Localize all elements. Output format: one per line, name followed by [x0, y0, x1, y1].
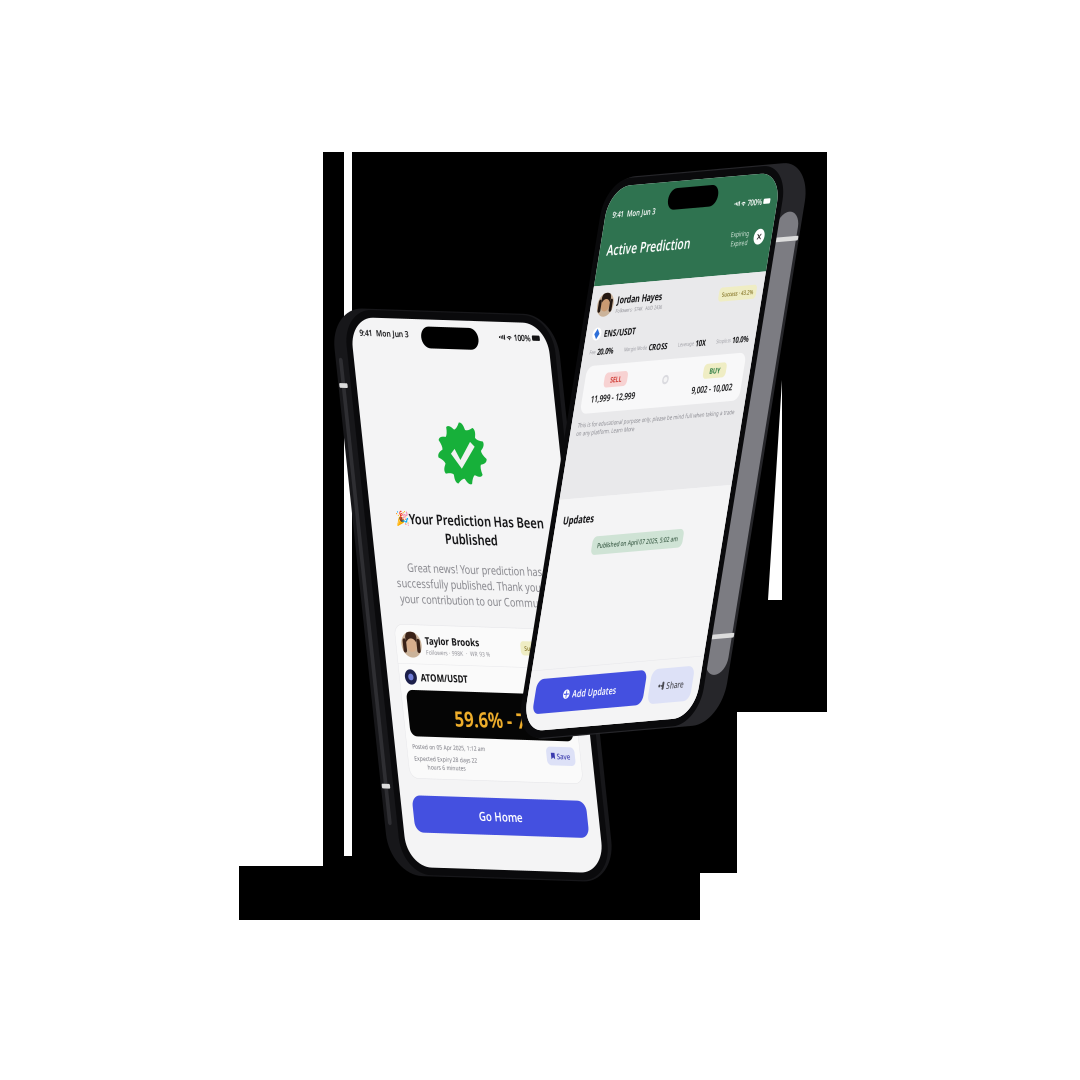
staticText: Expiring: [621, 167, 666, 183]
staticText: 10X: [576, 348, 602, 367]
staticText: Expected Expiry 28 days 22 hours 6 minut…: [373, 814, 510, 842]
staticText: ENS/USDT: [340, 316, 419, 338]
button[interactable]: Go Home: [359, 884, 739, 947]
staticText: 59.6% - 73.4%: [471, 727, 711, 775]
staticText: Success · 43.2%: [640, 621, 718, 635]
staticText: Fee: [311, 351, 326, 364]
staticText: Posted on 05 Apr 2025, 1:12 am: [372, 794, 531, 808]
staticText: Great news! Your prediction has successf…: [376, 483, 722, 563]
staticText: BUY: [622, 399, 649, 417]
staticText: 9,002 - 10,002: [585, 428, 687, 449]
staticText: Expired: [624, 183, 666, 199]
staticText: Success · 43.2%: [623, 270, 701, 285]
staticText: 🎉Your Prediction Has Been Published: [387, 397, 711, 461]
staticText: This is for educational purpose only, pl…: [311, 475, 703, 504]
staticText: 11,999 - 12,999: [333, 428, 444, 449]
button[interactable]: Add Updates: [313, 917, 588, 977]
staticText: Published on April 07 2025, 5:02 am: [409, 686, 611, 702]
button[interactable]: Close: [680, 169, 707, 196]
staticText: CROSS: [459, 348, 506, 367]
staticText: Updates: [313, 633, 390, 658]
staticText: ATOM/USDT: [406, 671, 509, 694]
staticText: 20.0%: [330, 348, 371, 367]
staticText: Followers · 998K · WR 93 %: [424, 633, 564, 647]
staticText: Expected ROI: [637, 711, 711, 727]
staticText: 10.0%: [668, 348, 709, 367]
staticText: Leverage: [532, 351, 572, 364]
staticText: Taylor Brooks: [424, 609, 543, 632]
staticText: Stoploss: [628, 351, 664, 364]
button[interactable]: Share: [600, 917, 707, 977]
staticText: Go Home: [501, 901, 596, 930]
staticText: Active Prediction: [313, 166, 522, 199]
